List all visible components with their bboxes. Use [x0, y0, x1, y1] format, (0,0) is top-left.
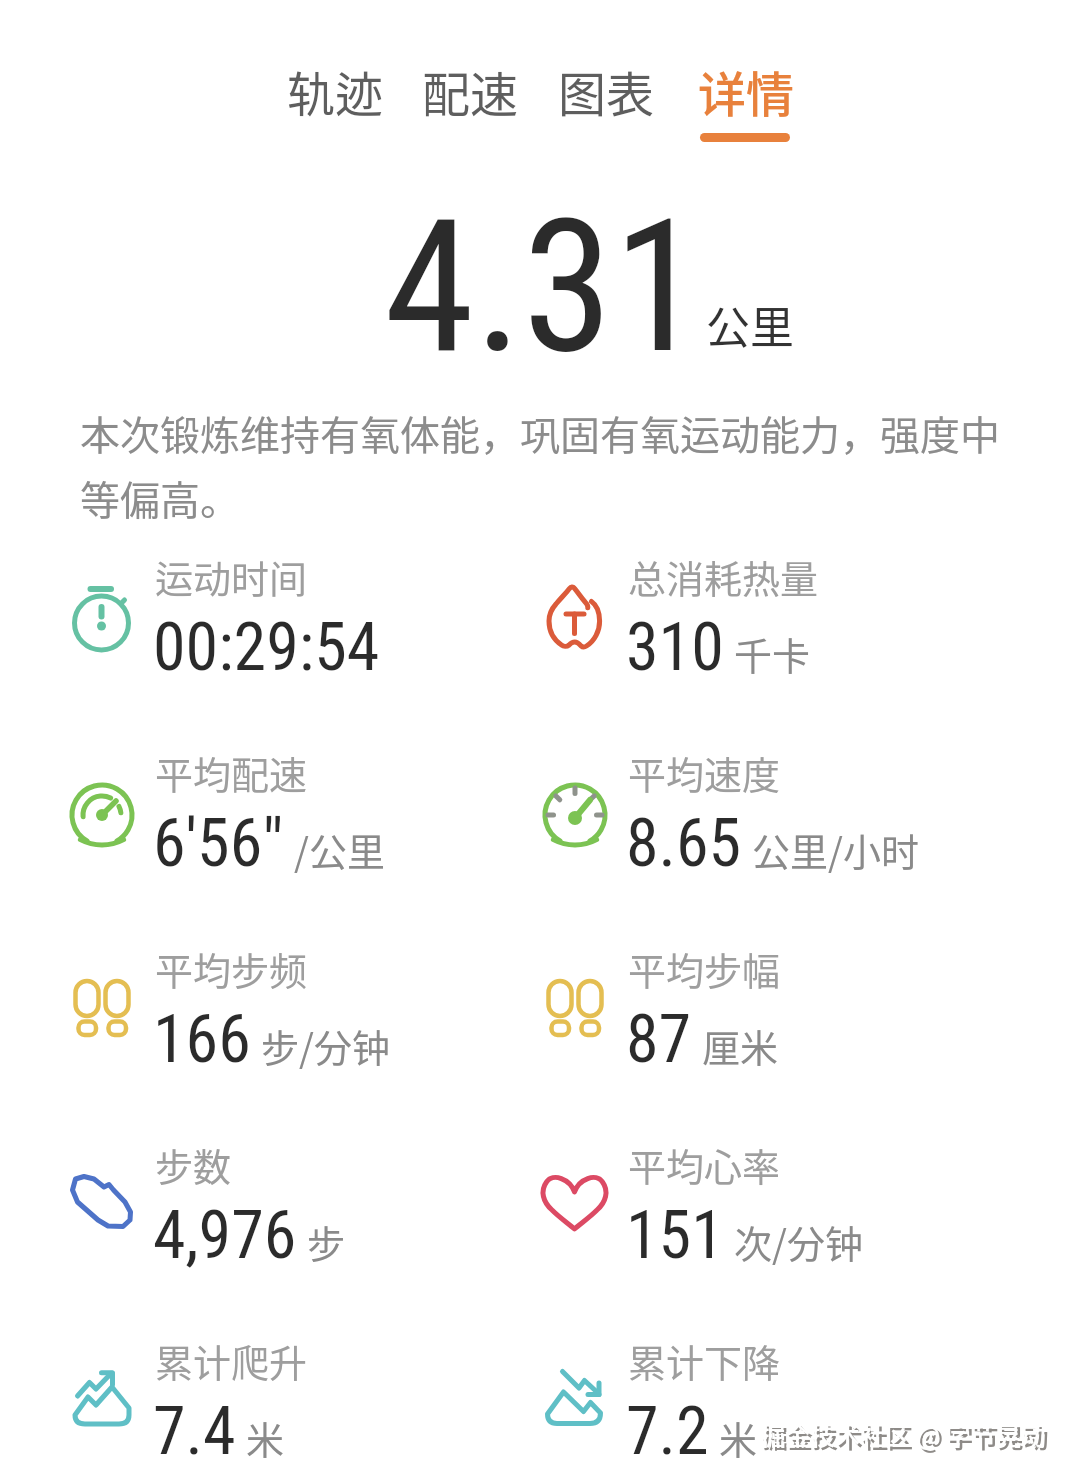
staticText: 310: [626, 609, 724, 686]
button[interactable]: 详情: [698, 56, 795, 126]
staticText: 6'56": [153, 805, 284, 882]
staticText: 步数: [155, 1137, 232, 1192]
staticText: 4.31: [384, 180, 704, 394]
button[interactable]: 轨迹: [287, 56, 384, 126]
staticText: 图表: [558, 56, 655, 126]
staticText: 累计下降: [628, 1333, 781, 1388]
staticText: 8.65: [626, 805, 742, 882]
staticText: 运动时间: [155, 549, 308, 604]
staticText: 次/分钟: [734, 1214, 863, 1269]
staticText: 平均步幅: [628, 941, 781, 996]
staticText: 公里: [706, 293, 794, 357]
staticText: 厘米: [702, 1018, 779, 1073]
staticText: 87: [626, 1001, 692, 1078]
staticText: 00:29:54: [153, 609, 380, 686]
staticText: 平均心率: [628, 1137, 781, 1192]
staticText: 千卡: [734, 626, 811, 681]
staticText: 7.2: [626, 1393, 709, 1470]
staticText: 4,976: [153, 1197, 297, 1274]
staticText: 步: [307, 1214, 346, 1269]
staticText: 总消耗热量: [628, 549, 819, 604]
staticText: 配速: [422, 56, 519, 126]
staticText: 累计爬升: [155, 1333, 308, 1388]
staticText: /公里: [294, 822, 385, 877]
staticText: 本次锻炼维持有氧体能，巩固有氧运动能力，强度中 等偏高。: [80, 404, 1000, 527]
staticText: 平均步频: [155, 941, 308, 996]
button[interactable]: 配速: [422, 56, 519, 126]
staticText: 掘金技术社区 @ 字节晃动: [763, 1419, 1049, 1455]
staticText: 掘金技术社区 @ 字节晃动: [760, 1416, 1046, 1452]
staticText: 7.4: [153, 1393, 236, 1470]
staticText: 166: [153, 1001, 251, 1078]
staticText: 米: [719, 1410, 758, 1465]
staticText: 平均速度: [628, 745, 781, 800]
staticText: 平均配速: [155, 745, 308, 800]
staticText: 步/分钟: [261, 1018, 390, 1073]
staticText: 公里/小时: [752, 822, 919, 877]
staticText: 米: [246, 1410, 285, 1465]
button[interactable]: 图表: [558, 56, 655, 126]
staticText: 151: [626, 1197, 724, 1274]
staticText: 详情: [698, 56, 795, 126]
staticText: 轨迹: [287, 56, 384, 126]
